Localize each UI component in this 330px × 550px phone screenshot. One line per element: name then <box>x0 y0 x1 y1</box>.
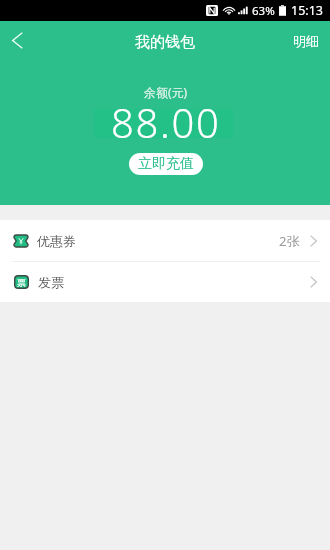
staticText: 明细 <box>293 33 319 49</box>
staticText: 优惠券 <box>37 233 76 249</box>
staticText: 票 <box>17 277 26 288</box>
staticText: 15:13 <box>291 2 323 19</box>
button[interactable]: Back <box>0 23 34 57</box>
staticText: 余额(元) <box>144 84 188 100</box>
staticText: 立即充值 <box>138 155 194 173</box>
button[interactable]: 明细 <box>281 27 330 55</box>
button[interactable]: 票 <box>0 262 330 302</box>
button[interactable]: 立即充值 <box>129 153 203 175</box>
staticText: 63% <box>252 3 275 19</box>
staticText: 2张 <box>279 232 300 250</box>
staticText: 我的钱包 <box>135 33 195 52</box>
staticText: 发票 <box>38 274 64 290</box>
button[interactable]: 优惠券 <box>0 220 330 261</box>
staticText: 88.00 <box>111 95 221 141</box>
